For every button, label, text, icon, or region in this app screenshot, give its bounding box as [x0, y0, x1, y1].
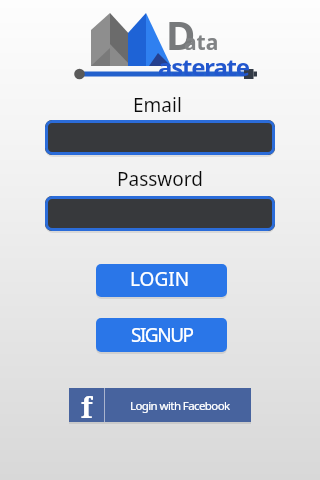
staticText: D	[166, 7, 196, 61]
button[interactable]	[45, 196, 275, 231]
staticText: Email	[133, 92, 182, 118]
staticText: LOGIN	[130, 266, 190, 292]
staticText: f	[81, 388, 93, 422]
button[interactable]: f	[69, 388, 251, 422]
staticText: asterate	[158, 50, 249, 83]
button[interactable]: LOGIN	[96, 264, 227, 297]
staticText: SIGNUP	[131, 322, 193, 348]
button[interactable]	[45, 120, 275, 155]
staticText: Password	[117, 166, 203, 192]
button[interactable]: SIGNUP	[96, 318, 227, 352]
staticText: ata	[184, 28, 219, 57]
staticText: Login with Facebook	[130, 398, 230, 414]
